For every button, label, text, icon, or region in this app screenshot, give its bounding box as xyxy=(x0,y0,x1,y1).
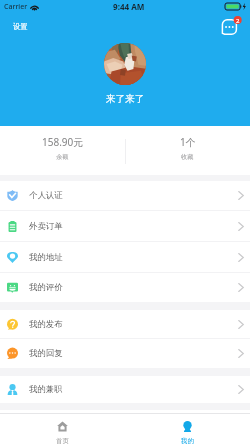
staticText: 首页 xyxy=(56,437,69,444)
button[interactable]: Messages xyxy=(222,17,242,37)
staticText: 158.90元 xyxy=(42,135,84,149)
staticText: Carrier xyxy=(4,2,28,12)
staticText: 余额 xyxy=(56,153,69,161)
staticText: 我的地址 xyxy=(29,252,63,263)
staticText: 我的兼职 xyxy=(29,384,63,395)
button[interactable]: 1个 xyxy=(125,126,250,175)
button[interactable]: 我的 xyxy=(125,414,250,444)
button[interactable]: 我的地址 xyxy=(0,242,250,273)
staticText: 外卖订单 xyxy=(29,221,63,232)
button[interactable]: 我的回复 xyxy=(0,339,250,368)
staticText: 设置 xyxy=(13,22,28,31)
staticText: 2 xyxy=(236,17,240,25)
staticText: 我的发布 xyxy=(29,319,63,330)
staticText: 我的 xyxy=(181,437,194,444)
button[interactable] xyxy=(104,43,146,85)
staticText: 个人认证 xyxy=(29,190,63,201)
button[interactable]: 外卖订单 xyxy=(0,211,250,242)
staticText: 我的评价 xyxy=(29,282,63,293)
button[interactable]: 首页 xyxy=(0,414,125,444)
staticText: 1个 xyxy=(180,135,196,149)
staticText: 收藏 xyxy=(181,153,194,161)
button[interactable]: 设置 xyxy=(13,22,28,31)
button[interactable]: 个人认证 xyxy=(0,181,250,211)
button[interactable]: 我的发布 xyxy=(0,310,250,339)
button[interactable]: 我的评价 xyxy=(0,273,250,302)
staticText: 我的回复 xyxy=(29,348,63,359)
button[interactable]: 我的兼职 xyxy=(0,376,250,403)
staticText: 来了来了 xyxy=(106,93,145,105)
staticText: 9:44 AM xyxy=(113,1,145,12)
button[interactable]: 158.90元 xyxy=(0,126,125,175)
